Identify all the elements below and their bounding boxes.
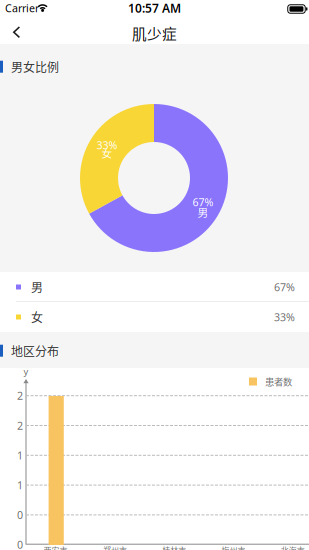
staticText: 0: [17, 537, 23, 550]
button[interactable]: Back: [0, 20, 42, 44]
staticText: 0: [17, 508, 23, 522]
staticText: 地区分布: [11, 342, 59, 359]
staticText: 33%: [274, 310, 295, 324]
staticText: 女: [31, 308, 43, 326]
staticText: 2: [17, 389, 23, 403]
staticText: 1: [17, 448, 23, 462]
staticText: y: [23, 365, 28, 378]
staticText: 男女比例: [11, 58, 59, 75]
staticText: 67%: [274, 280, 295, 294]
staticText: 2: [17, 418, 23, 433]
button[interactable]: 女: [0, 302, 309, 332]
staticText: 患者数: [265, 375, 292, 388]
staticText: 桂林市: [162, 544, 186, 550]
staticText: 1: [17, 478, 23, 492]
staticText: 33%: [96, 138, 117, 152]
staticText: 67%: [192, 195, 213, 209]
staticText: 北海市: [281, 544, 305, 550]
staticText: 男: [197, 204, 208, 220]
staticText: 10:57 AM: [128, 0, 181, 16]
staticText: 西安市: [44, 544, 68, 550]
staticText: 女: [101, 145, 112, 160]
staticText: 男: [31, 278, 43, 296]
staticText: 梅州市: [221, 544, 245, 550]
staticText: 肌少症: [132, 22, 177, 44]
button[interactable]: 男: [0, 272, 309, 302]
staticText: 郑州市: [103, 544, 127, 550]
staticText: Carrier: [5, 1, 39, 15]
